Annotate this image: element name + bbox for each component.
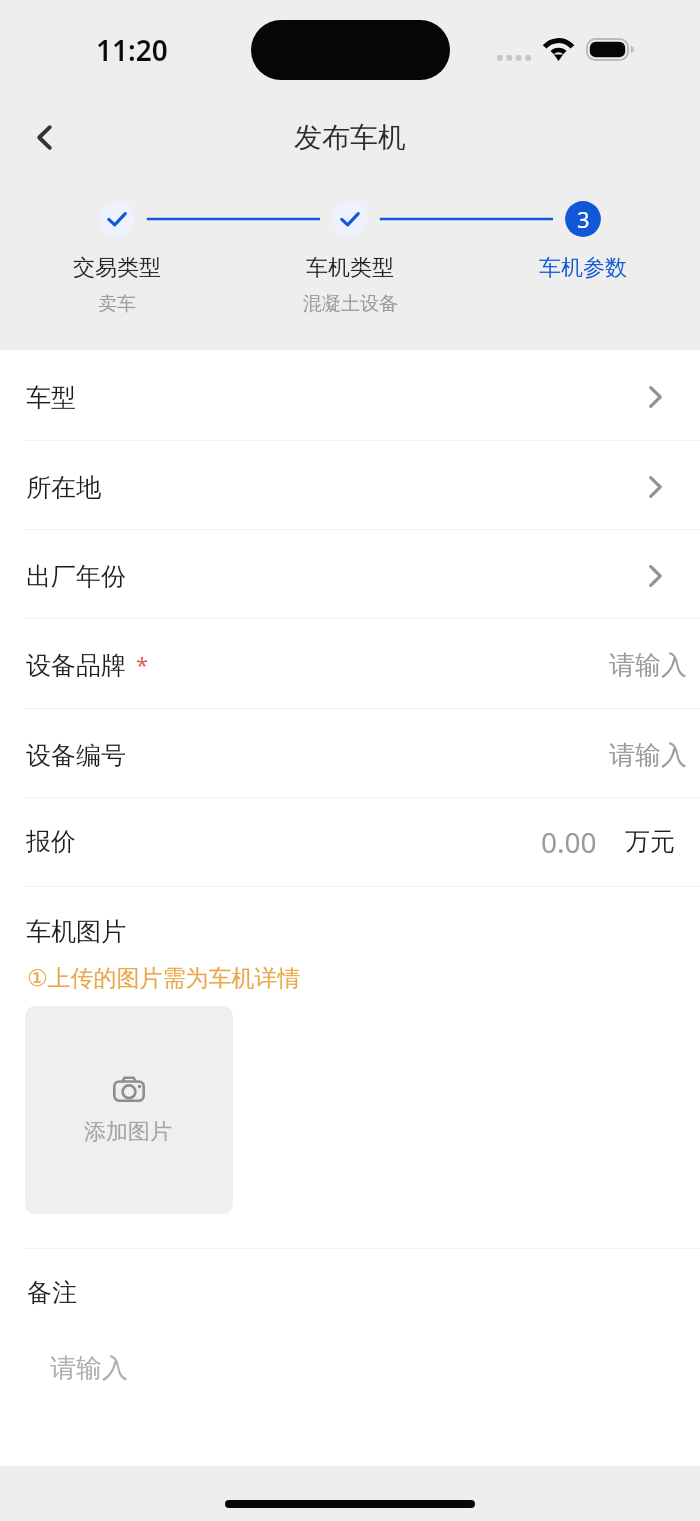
button[interactable]: 所在地 [0, 440, 700, 529]
staticText: 交易类型 [73, 254, 161, 282]
staticText: 设备编号 [26, 740, 126, 771]
staticText: 设备品牌 [26, 650, 126, 681]
staticText: * [136, 649, 149, 679]
button[interactable]: 车机参数 [483, 254, 683, 282]
button[interactable]: Back [13, 106, 75, 168]
staticText: 车机参数 [539, 254, 627, 282]
staticText: 发布车机 [294, 120, 406, 155]
staticText: 请输入 [609, 649, 687, 682]
staticText: 请输入 [50, 1352, 128, 1385]
button[interactable]: 报价 [0, 797, 700, 886]
staticText: 车机图片 [26, 916, 126, 947]
staticText: 车型 [26, 382, 76, 413]
staticText: 添加图片 [84, 1118, 172, 1146]
button[interactable]: 添加图片 [25, 1006, 233, 1214]
staticText: 所在地 [26, 472, 101, 503]
button[interactable]: 请输入 [0, 1335, 700, 1445]
button[interactable]: 车型 [0, 350, 700, 439]
staticText: 请输入 [609, 739, 687, 772]
staticText: 备注 [27, 1277, 77, 1308]
staticText: 3 [577, 204, 590, 234]
staticText: 0.00 [541, 823, 597, 861]
button[interactable]: 设备编号 [0, 708, 700, 797]
button[interactable]: 设备品牌 [0, 618, 700, 707]
staticText: ①上传的图片需为车机详情 [27, 964, 301, 993]
button[interactable]: 交易类型 [17, 254, 217, 316]
staticText: 万元 [625, 826, 675, 857]
staticText: 报价 [26, 826, 76, 857]
staticText: 混凝土设备 [303, 292, 398, 316]
staticText: 车机类型 [306, 254, 394, 282]
staticText: 卖车 [98, 292, 136, 316]
staticText: 出厂年份 [26, 561, 126, 592]
staticText: 11:20 [96, 31, 168, 69]
button[interactable]: 车机类型 [250, 254, 450, 316]
button[interactable]: 出厂年份 [0, 529, 700, 618]
